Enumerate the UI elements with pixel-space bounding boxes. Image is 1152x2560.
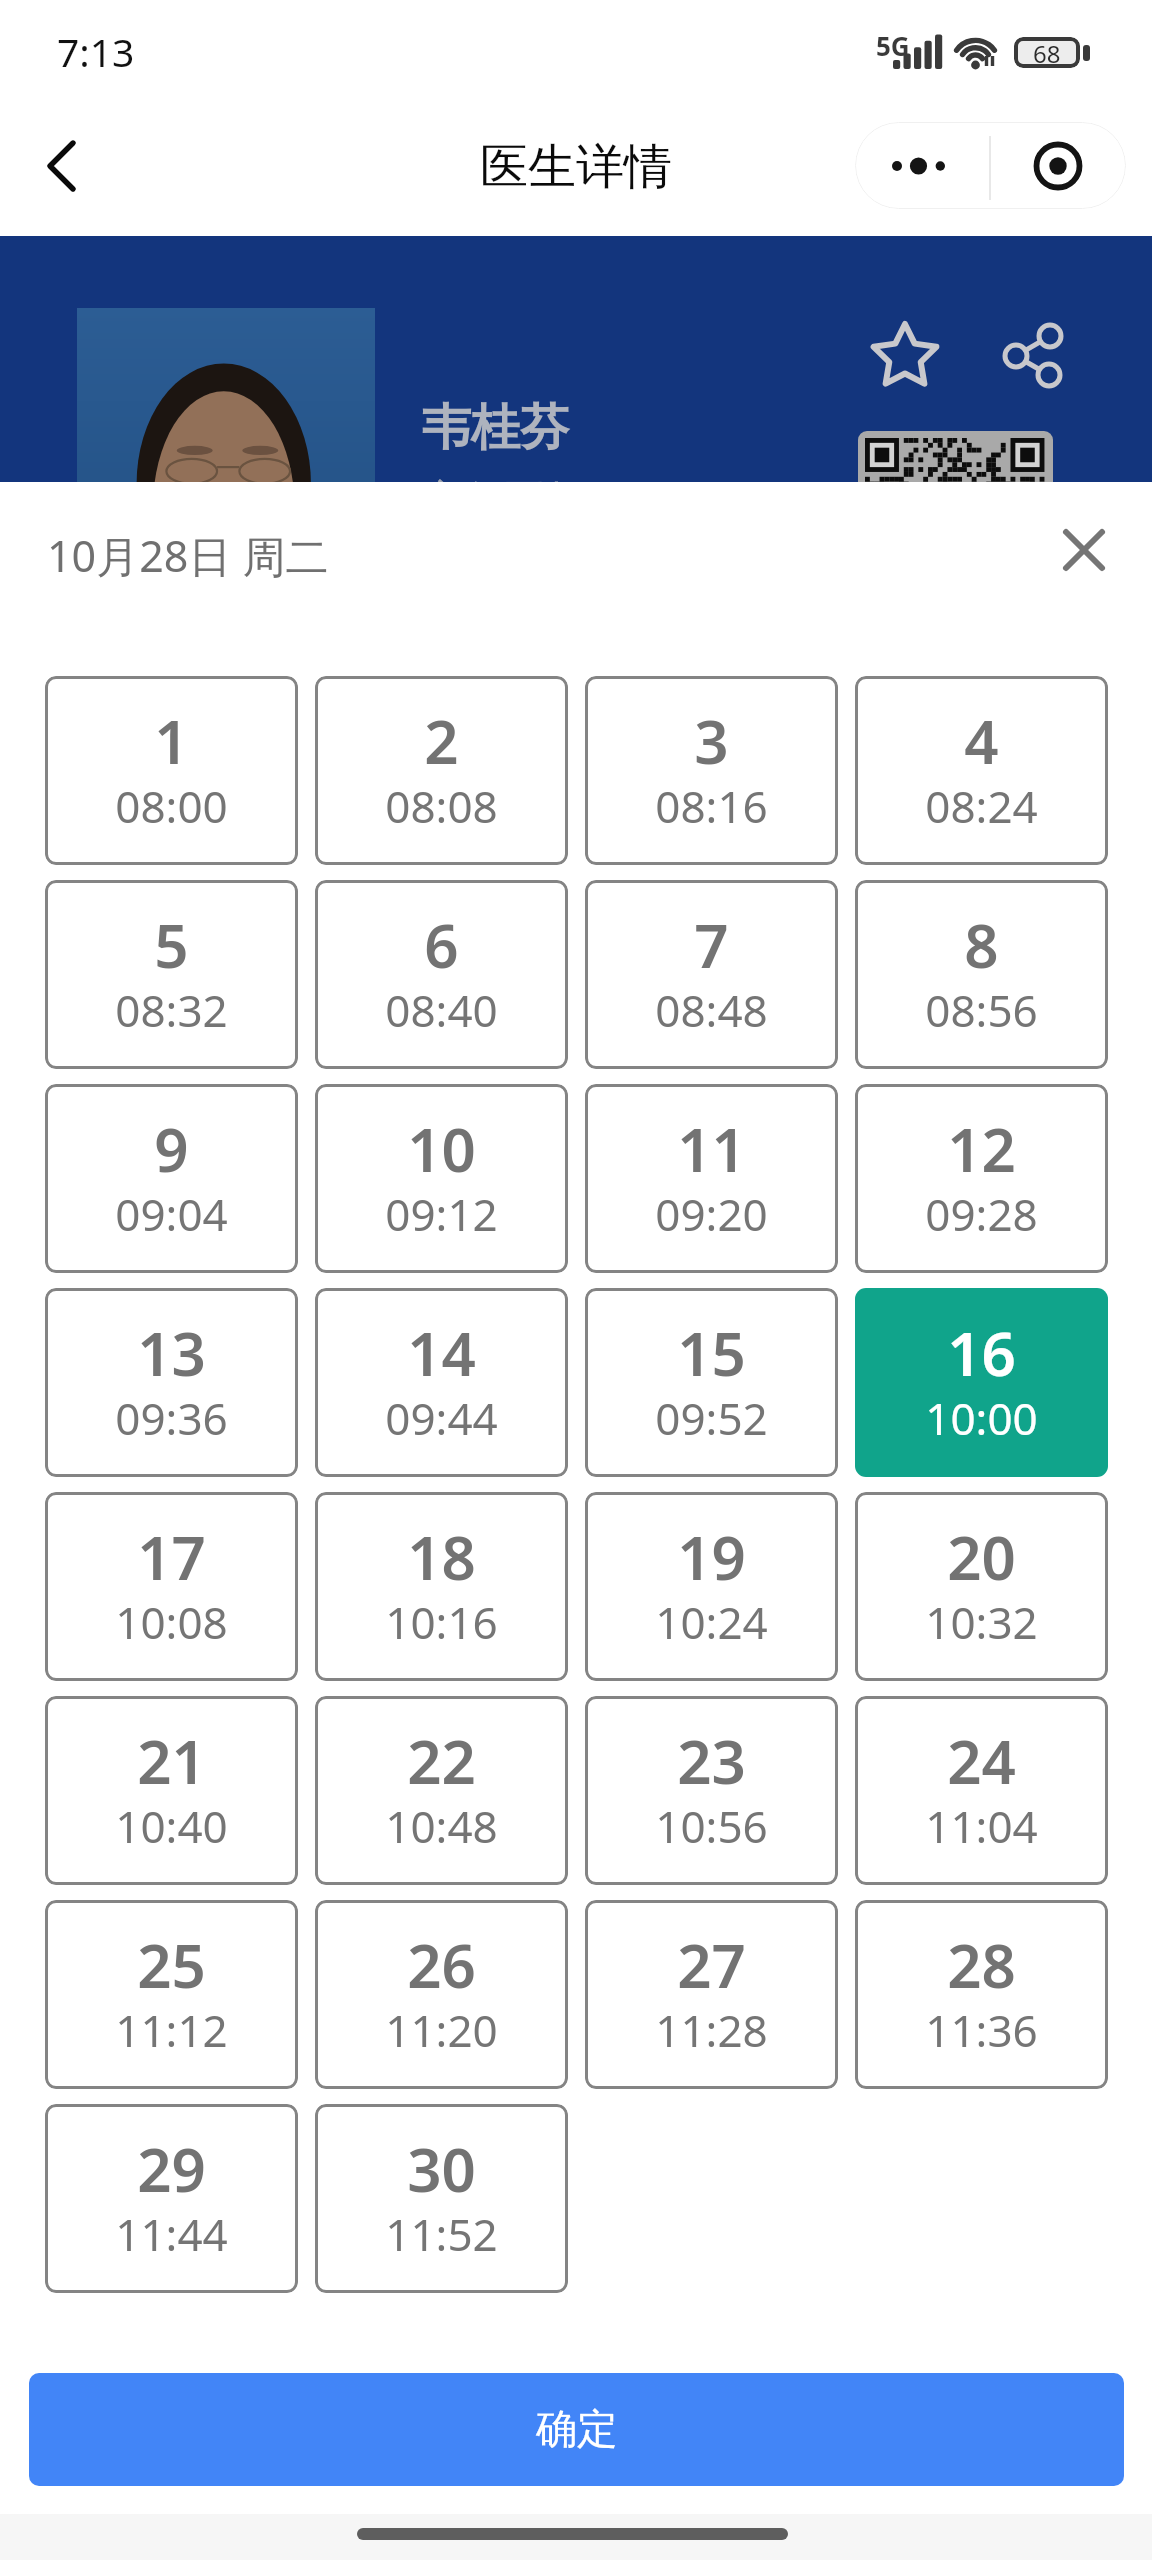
staticText: 16: [947, 1312, 1016, 1394]
staticText: 11:36: [925, 2000, 1038, 2060]
staticText: 医生详情: [480, 137, 672, 197]
staticText: 17: [137, 1516, 206, 1598]
button[interactable]: 28: [855, 1900, 1108, 2089]
staticText: 09:44: [385, 1388, 498, 1448]
staticText: 08:16: [655, 776, 768, 836]
button[interactable]: 8: [855, 880, 1108, 1069]
button[interactable]: 19: [585, 1492, 838, 1681]
staticText: 11:20: [385, 2000, 498, 2060]
staticText: 10月28日 周二: [47, 526, 329, 585]
staticText: 09:36: [115, 1388, 228, 1448]
button[interactable]: 10: [315, 1084, 568, 1273]
staticText: 主任医师: [424, 474, 584, 524]
staticText: 10:32: [925, 1592, 1038, 1652]
staticText: 22: [407, 1720, 476, 1802]
staticText: 15: [677, 1312, 746, 1394]
staticText: 10:48: [385, 1796, 498, 1856]
staticText: 10:56: [655, 1796, 768, 1856]
staticText: 21: [137, 1720, 206, 1802]
staticText: 5G: [876, 28, 910, 63]
button[interactable]: Favorite: [869, 319, 941, 391]
button[interactable]: 27: [585, 1900, 838, 2089]
button[interactable]: 7: [585, 880, 838, 1069]
staticText: 确定: [536, 2404, 618, 2456]
staticText: 5: [154, 904, 189, 986]
button[interactable]: 12: [855, 1084, 1108, 1273]
button[interactable]: 2: [315, 676, 568, 865]
staticText: 08:08: [385, 776, 498, 836]
staticText: 30: [407, 2128, 476, 2210]
button[interactable]: 16: [855, 1288, 1108, 1477]
staticText: 10:16: [385, 1592, 498, 1652]
staticText: 韦桂芬: [422, 397, 569, 459]
staticText: 20: [947, 1516, 1016, 1598]
button[interactable]: 17: [45, 1492, 298, 1681]
button[interactable]: 6: [315, 880, 568, 1069]
staticText: 28: [947, 1924, 1016, 2006]
staticText: 24: [947, 1720, 1016, 1802]
button[interactable]: Close mini program: [990, 122, 1126, 209]
staticText: 08:48: [655, 980, 768, 1040]
staticText: 29: [137, 2128, 206, 2210]
button[interactable]: 11: [585, 1084, 838, 1273]
staticText: 8: [964, 904, 999, 986]
button[interactable]: 23: [585, 1696, 838, 1885]
staticText: 23: [677, 1720, 746, 1802]
button[interactable]: More options: [855, 122, 990, 209]
staticText: 10:40: [115, 1796, 228, 1856]
button[interactable]: Close: [1044, 510, 1124, 590]
staticText: 25: [137, 1924, 206, 2006]
button[interactable]: 15: [585, 1288, 838, 1477]
staticText: 08:40: [385, 980, 498, 1040]
staticText: 11:28: [655, 2000, 768, 2060]
staticText: 68: [1033, 37, 1061, 68]
button[interactable]: 3: [585, 676, 838, 865]
staticText: 08:56: [925, 980, 1038, 1040]
staticText: 09:28: [925, 1184, 1038, 1244]
button[interactable]: 确定: [29, 2373, 1124, 2486]
button[interactable]: 20: [855, 1492, 1108, 1681]
staticText: 19: [677, 1516, 746, 1598]
button[interactable]: 21: [45, 1696, 298, 1885]
staticText: 7:13: [57, 25, 135, 78]
staticText: 26: [407, 1924, 476, 2006]
staticText: 18: [407, 1516, 476, 1598]
staticText: 11:04: [925, 1796, 1038, 1856]
button[interactable]: 29: [45, 2104, 298, 2293]
staticText: 12: [947, 1108, 1016, 1190]
staticText: 11:44: [115, 2204, 228, 2264]
staticText: 08:32: [115, 980, 228, 1040]
button[interactable]: 14: [315, 1288, 568, 1477]
staticText: 09:04: [115, 1184, 228, 1244]
staticText: 08:24: [925, 776, 1038, 836]
button[interactable]: 5: [45, 880, 298, 1069]
staticText: 11: [677, 1108, 746, 1190]
button[interactable]: 22: [315, 1696, 568, 1885]
button[interactable]: 18: [315, 1492, 568, 1681]
staticText: 13: [137, 1312, 206, 1394]
staticText: 7: [694, 904, 729, 986]
button[interactable]: 24: [855, 1696, 1108, 1885]
staticText: 4: [964, 700, 999, 782]
staticText: 09:20: [655, 1184, 768, 1244]
staticText: 10:00: [925, 1388, 1038, 1448]
button[interactable]: 4: [855, 676, 1108, 865]
button[interactable]: 30: [315, 2104, 568, 2293]
staticText: 09:12: [385, 1184, 498, 1244]
button[interactable]: Share: [1000, 319, 1072, 391]
button[interactable]: 9: [45, 1084, 298, 1273]
staticText: 08:00: [115, 776, 228, 836]
staticText: 11:52: [385, 2204, 498, 2264]
staticText: 2: [424, 700, 459, 782]
button[interactable]: Back: [22, 122, 102, 202]
button[interactable]: 25: [45, 1900, 298, 2089]
staticText: 11:12: [115, 2000, 228, 2060]
staticText: 9: [154, 1108, 189, 1190]
button[interactable]: 1: [45, 676, 298, 865]
staticText: 10:08: [115, 1592, 228, 1652]
staticText: 1: [154, 700, 189, 782]
staticText: 3: [694, 700, 729, 782]
button[interactable]: 13: [45, 1288, 298, 1477]
button[interactable]: 26: [315, 1900, 568, 2089]
staticText: 10:24: [655, 1592, 768, 1652]
